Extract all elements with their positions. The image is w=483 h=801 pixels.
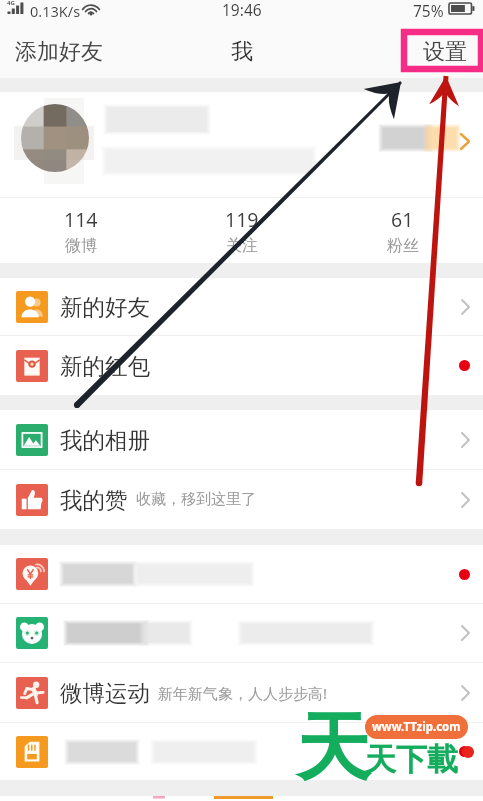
staticText: 微博运动	[60, 679, 150, 707]
staticText: 75%	[413, 0, 444, 21]
button[interactable]: 展开	[0, 92, 483, 197]
button[interactable]: 设置	[423, 25, 467, 78]
staticText: 微博	[65, 236, 97, 256]
staticText: 我	[231, 38, 253, 66]
button[interactable]: 新的好友	[0, 278, 483, 335]
button[interactable]: 微博运动	[0, 663, 483, 722]
staticText: 收藏，移到这里了	[136, 490, 256, 509]
other: 展开	[459, 132, 471, 151]
staticText: 天下載	[365, 740, 458, 779]
staticText: 61	[391, 206, 414, 233]
staticText: 天	[296, 702, 370, 795]
button[interactable]: 添加好友	[15, 25, 103, 78]
button[interactable]: 新的红包	[0, 336, 483, 395]
staticText: 我的相册	[60, 426, 150, 454]
staticText: 新的红包	[60, 352, 150, 380]
staticText: 添加好友	[15, 38, 103, 66]
staticText: 关注	[226, 236, 258, 256]
button[interactable]: 熊猫	[0, 604, 483, 662]
staticText: 4G	[7, 0, 15, 7]
staticText: www.TTzip.com	[372, 719, 461, 735]
button[interactable]: 流量	[0, 723, 483, 780]
staticText: 19:46	[222, 0, 262, 20]
button[interactable]: 我的相册	[0, 410, 483, 469]
staticText: 119	[225, 206, 259, 233]
staticText: 设置	[423, 38, 467, 66]
button[interactable]: 钱包	[0, 545, 483, 603]
staticText: 新的好友	[60, 293, 150, 321]
button[interactable]: 61	[322, 198, 483, 263]
staticText: 新年新气象，人人步步高!	[158, 683, 328, 703]
button[interactable]: 119	[161, 198, 322, 263]
staticText: 114	[64, 206, 98, 233]
button[interactable]: 我的赞	[0, 470, 483, 529]
staticText: 我的赞	[60, 486, 128, 514]
staticText: 粉丝	[387, 236, 419, 256]
button[interactable]: 114	[0, 198, 161, 263]
staticText: 0.13K/s	[30, 1, 81, 21]
